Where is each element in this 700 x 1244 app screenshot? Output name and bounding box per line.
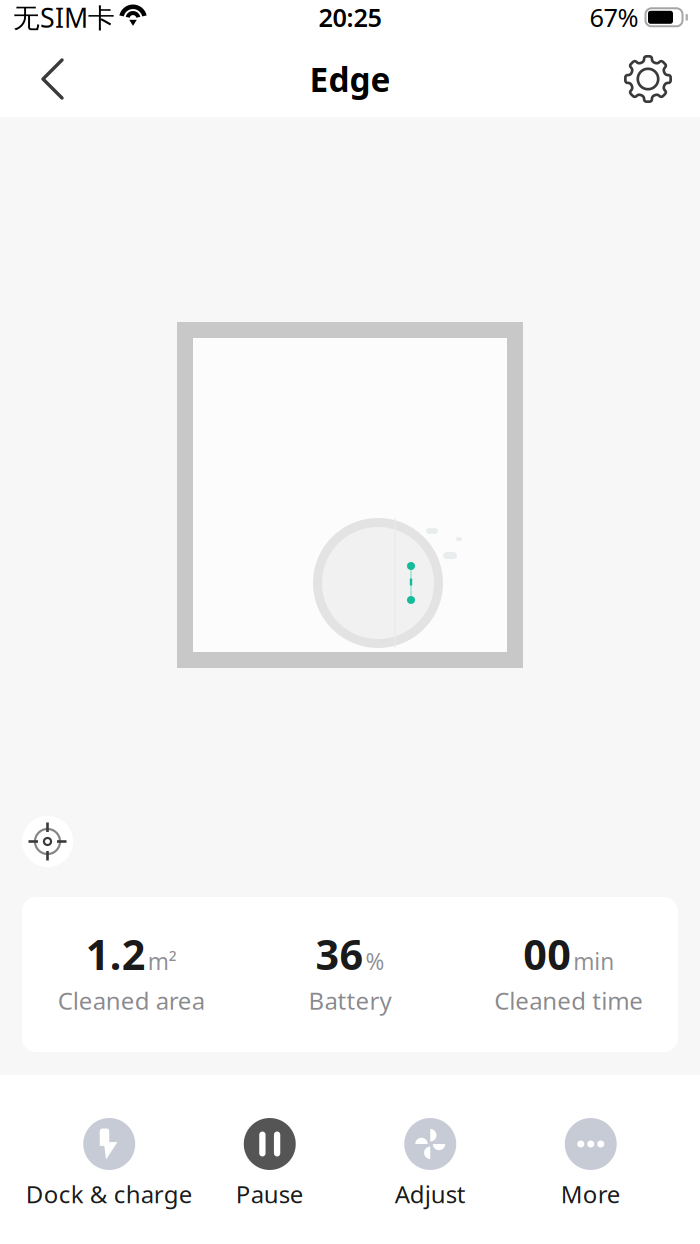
staticText: 67% [589, 0, 638, 34]
button[interactable]: Locate robot [22, 816, 73, 867]
staticText: More [561, 1178, 621, 1210]
staticText: 00 [523, 927, 571, 981]
staticText: Dock & charge [26, 1178, 193, 1210]
staticText: 无SIM卡 [13, 0, 115, 35]
button[interactable]: Dock & charge [29, 1118, 189, 1210]
staticText: Battery [308, 984, 391, 1016]
staticText: m² [148, 946, 177, 976]
staticText: Edge [309, 57, 390, 101]
staticText: min [573, 946, 614, 976]
staticText: Cleaned area [58, 984, 205, 1016]
button[interactable]: More [510, 1118, 671, 1210]
staticText: 20:25 [318, 0, 381, 34]
button[interactable]: Pause [189, 1118, 350, 1210]
staticText: % [365, 946, 384, 976]
button[interactable]: Adjust [350, 1118, 510, 1210]
staticText: 36 [315, 927, 363, 981]
button[interactable]: Settings [603, 44, 700, 114]
staticText: Adjust [395, 1178, 466, 1210]
staticText: Pause [236, 1178, 304, 1210]
button[interactable]: Back [0, 44, 90, 114]
staticText: Cleaned time [494, 984, 643, 1016]
staticText: 1.2 [86, 927, 146, 981]
